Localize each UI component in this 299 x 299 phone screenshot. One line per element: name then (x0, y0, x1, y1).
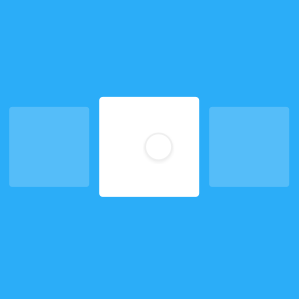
button[interactable]: Selected card (99, 97, 199, 197)
